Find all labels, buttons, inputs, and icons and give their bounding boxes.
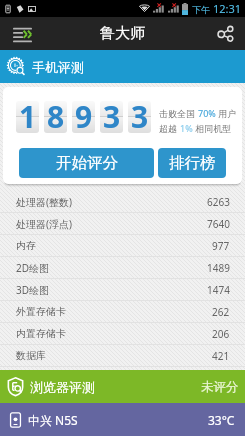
staticText: 处理器(整数) <box>16 195 72 209</box>
staticText: 外置存储卡 <box>16 305 66 318</box>
button[interactable]: 内存 <box>0 235 245 256</box>
staticText: 70% <box>198 107 216 119</box>
button[interactable]: 浏览器评测 <box>0 370 245 403</box>
button[interactable]: 外置存储卡 <box>0 301 245 322</box>
staticText: 3 <box>131 96 149 128</box>
button[interactable]: 3D绘图 <box>0 279 245 300</box>
button[interactable]: 排行榜 <box>158 148 226 178</box>
staticText: 3 <box>103 96 121 128</box>
staticText: 8 <box>47 96 65 128</box>
staticText: 击败全国 <box>159 107 198 119</box>
staticText: 6263 <box>207 195 230 209</box>
button[interactable]: 开始评分 <box>19 148 154 178</box>
staticText: 开始评分 <box>56 153 118 173</box>
button[interactable]: 处理器(浮点) <box>0 213 245 234</box>
staticText: 用户 <box>216 107 237 119</box>
staticText: 1 <box>19 96 37 128</box>
staticText: 7640 <box>207 217 230 231</box>
staticText: 421 <box>212 349 230 363</box>
staticText: 相同机型 <box>193 122 232 134</box>
button[interactable]: Menu <box>0 17 44 50</box>
staticText: 数据库 <box>16 349 46 362</box>
button[interactable]: 内置存储卡 <box>0 323 245 344</box>
staticText: 内置存储卡 <box>16 327 66 340</box>
staticText: 鲁大师 <box>100 24 145 43</box>
button[interactable]: 处理器(整数) <box>0 191 245 212</box>
staticText: 9 <box>75 96 93 128</box>
staticText: 浏览器评测 <box>30 379 95 395</box>
button[interactable]: 2D绘图 <box>0 257 245 278</box>
staticText: 下午 <box>192 3 213 15</box>
staticText: 2D绘图 <box>16 261 50 275</box>
staticText: 1474 <box>207 283 230 297</box>
staticText: 206 <box>212 327 230 341</box>
button[interactable]: 手机评测 <box>0 50 245 83</box>
staticText: 内存 <box>16 239 36 252</box>
staticText: 排行榜 <box>169 153 216 173</box>
staticText: 3D绘图 <box>16 283 50 297</box>
staticText: 1489 <box>207 261 230 275</box>
staticText: 1% <box>180 122 193 134</box>
button[interactable]: Share <box>205 17 245 50</box>
staticText: 未评分 <box>201 379 239 395</box>
staticText: 超越 <box>159 122 180 134</box>
staticText: 33°C <box>208 412 235 428</box>
staticText: 中兴 N5S <box>28 412 78 428</box>
button[interactable]: 数据库 <box>0 345 245 366</box>
staticText: 977 <box>212 239 230 253</box>
button[interactable]: 中兴 N5S <box>0 403 245 436</box>
staticText: 处理器(浮点) <box>16 217 72 231</box>
staticText: 262 <box>212 305 230 319</box>
staticText: 手机评测 <box>32 59 84 75</box>
staticText: 12:31 <box>213 1 242 16</box>
